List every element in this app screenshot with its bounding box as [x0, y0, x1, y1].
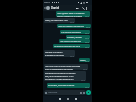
staticText: Message [48, 91, 58, 94]
staticText: tres, en la segunda planta. Si no [45, 75, 74, 78]
button[interactable]: Nos vemos manana alli [59, 39, 90, 43]
button[interactable]: Message [44, 90, 86, 95]
staticText: 10:14 [85, 86, 89, 88]
staticText: Una cosa mas: recuerda traer el portatil [45, 65, 81, 68]
staticText: Recuerda que la sala es la numero [45, 72, 76, 75]
staticText: 10:14 [44, 1, 50, 4]
staticText: 10:14 [81, 79, 85, 81]
button[interactable]: Recents [74, 97, 78, 101]
button[interactable]: Voice message [86, 90, 91, 95]
staticText: Llevo los papeles del informe [58, 25, 84, 28]
staticText: encuentras a nadie pregunta en [45, 78, 74, 81]
button[interactable]: Daniel [46, 5, 76, 11]
staticText: guardada en el movil [45, 54, 64, 57]
button[interactable]: Gracias! Ya la tengo [44, 50, 75, 57]
button[interactable]: Back [43, 5, 46, 11]
staticText: 10:14 [85, 46, 89, 48]
staticText: 10:14 [85, 32, 89, 34]
staticText: y el informe trimestral [61, 31, 81, 34]
staticText: Daniel [51, 6, 60, 10]
button[interactable]: Video call [75, 5, 80, 11]
button[interactable]: Hola! Queria saber si podemos [56, 11, 90, 17]
staticText: Te envio la direccion por aqui [54, 45, 80, 48]
staticText: Gracias! Ya la tengo [45, 51, 63, 54]
staticText: 10:14 [85, 60, 89, 62]
button[interactable]: Claro, me viene bien. Nos [44, 18, 75, 23]
button[interactable]: Te envio la direccion por aqui [53, 44, 90, 48]
staticText: 10:14 [85, 41, 89, 43]
staticText: 10:14 [86, 26, 90, 28]
button[interactable]: Una cosa mas: recuerda traer el portatil [44, 64, 88, 70]
staticText: Entendido, alli estare puntual. [48, 84, 75, 87]
button[interactable]: Genial [79, 58, 90, 62]
button[interactable]: Perfecto, gracias [66, 35, 90, 39]
button[interactable]: More options [85, 5, 88, 11]
staticText: Nos vemos manana alli [60, 40, 81, 43]
staticText: 10:14 [85, 15, 89, 17]
button[interactable]: Back [58, 97, 62, 101]
button[interactable]: y el informe trimestral [60, 30, 90, 34]
staticText: 10:14 [70, 21, 74, 23]
staticText: 10:14 [70, 55, 74, 57]
button[interactable]: Call [81, 5, 86, 11]
staticText: Genial [80, 59, 86, 62]
button[interactable]: Llevo los papeles del informe [57, 24, 91, 28]
staticText: Claro, me viene bien. Nos [45, 19, 68, 22]
staticText: vernos manana en la oficina [57, 15, 82, 17]
staticText: Hola! Queria saber si podemos [57, 12, 85, 15]
button[interactable]: Recuerda que la sala es la numero [44, 71, 86, 81]
staticText: Perfecto, gracias [67, 36, 82, 39]
staticText: 10:14 [83, 68, 87, 70]
button[interactable]: Entendido, alli estare puntual. [47, 83, 90, 88]
button[interactable]: Home [66, 97, 70, 101]
staticText: 10:14 [85, 37, 89, 39]
staticText: para la presentacion del equipo [45, 68, 74, 70]
